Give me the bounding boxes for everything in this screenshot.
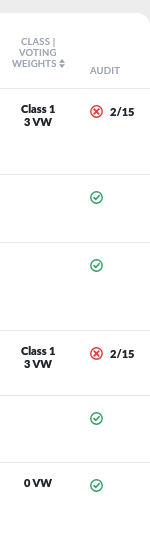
button[interactable]: 0 VW <box>0 463 150 540</box>
staticText: 3 VW <box>24 357 53 370</box>
staticText: WEIGHTS <box>12 58 57 69</box>
staticText: Class 1 <box>21 102 56 115</box>
staticText: AUDIT <box>90 65 121 76</box>
other: Audit failed <box>90 105 103 118</box>
staticText: 2/15 <box>110 347 135 360</box>
staticText: VOTING <box>19 47 57 58</box>
staticText: 2/15 <box>110 105 135 118</box>
other: Audit passed <box>90 412 103 425</box>
staticText: 2/15 <box>110 347 135 360</box>
other: Audit passed <box>90 259 103 272</box>
staticText: 0 VW <box>24 476 53 489</box>
button[interactable]: Audit passed <box>0 175 150 242</box>
staticText: 3 VW <box>24 357 53 370</box>
staticText: Class 1 <box>21 344 56 357</box>
staticText: 3 VW <box>24 115 53 128</box>
staticText: 0 VW <box>24 476 53 489</box>
staticText: Class 1 <box>21 344 56 357</box>
button[interactable]: AUDIT <box>90 65 121 76</box>
button[interactable]: CLASS | <box>0 36 76 69</box>
staticText: CLASS | <box>21 36 56 47</box>
other: Audit failed <box>90 347 103 360</box>
button[interactable]: Audit passed <box>0 396 150 462</box>
button[interactable]: Class 1 <box>0 331 150 395</box>
staticText: 2/15 <box>110 105 135 118</box>
other: Audit passed <box>90 479 103 492</box>
button[interactable]: Class 1 <box>0 89 150 174</box>
button[interactable]: Audit passed <box>0 243 150 330</box>
staticText: Class 1 <box>21 102 56 115</box>
staticText: 3 VW <box>24 115 53 128</box>
other: Audit passed <box>90 191 103 204</box>
